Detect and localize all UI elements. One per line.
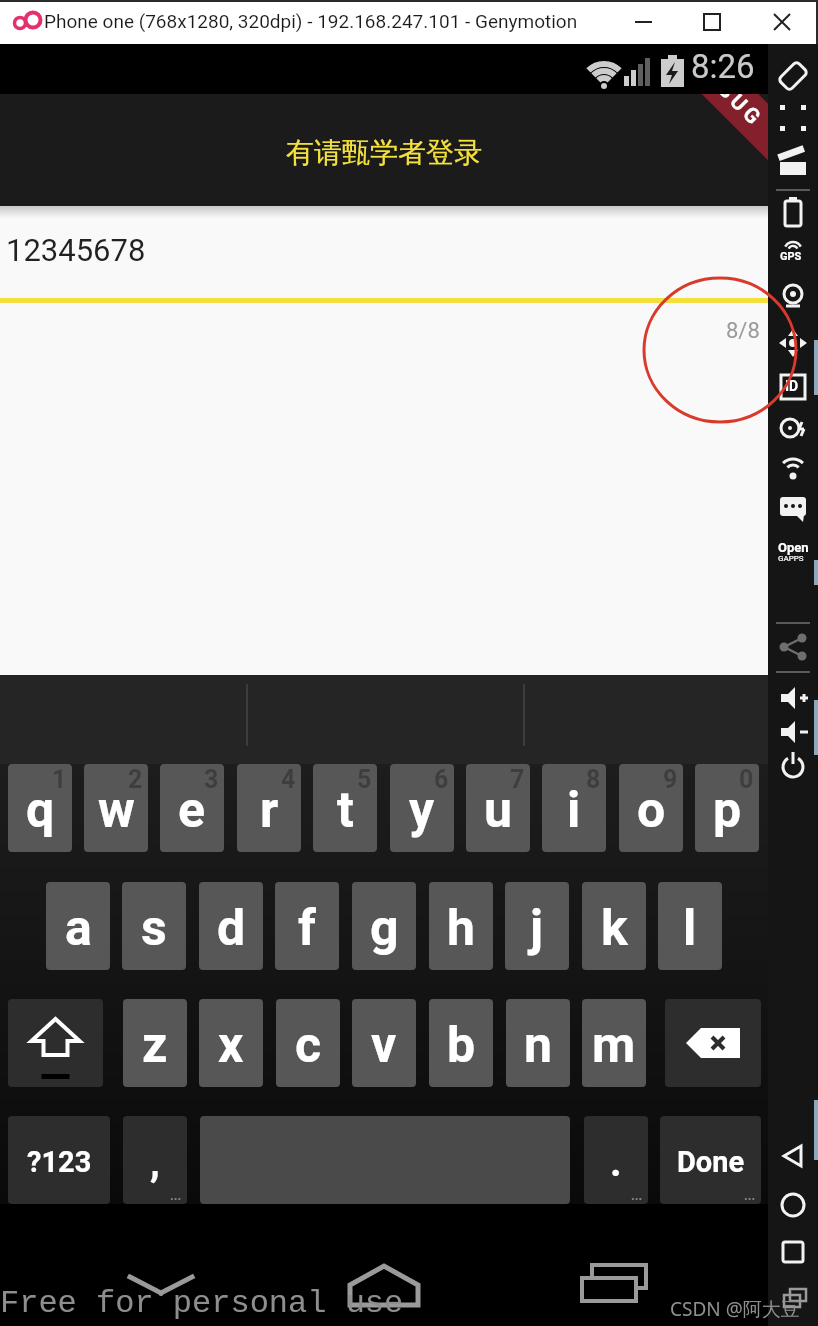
button[interactable]: f <box>275 882 339 970</box>
button[interactable]: y <box>390 764 454 852</box>
staticText: u <box>484 781 513 840</box>
staticText: 有请甄学者登录 <box>286 135 482 170</box>
button[interactable] <box>692 2 734 42</box>
staticText: c <box>295 1016 322 1075</box>
staticText: x <box>218 1016 244 1075</box>
staticText: 4 <box>281 765 296 794</box>
staticText: d <box>217 899 246 958</box>
button[interactable]: l <box>658 882 722 970</box>
staticText: 6 <box>434 765 449 794</box>
button[interactable] <box>556 1250 652 1314</box>
staticText: r <box>260 781 279 840</box>
button[interactable]: k <box>582 882 646 970</box>
button[interactable]: x <box>199 999 263 1087</box>
staticText: 3 <box>204 765 219 794</box>
staticText: Phone one (768x1280, 320dpi) - 192.168.2… <box>44 10 578 32</box>
button[interactable] <box>112 1252 212 1314</box>
button[interactable]: e <box>160 764 224 852</box>
staticText: f <box>298 899 316 958</box>
staticText: Open <box>778 540 809 555</box>
staticText: GPS <box>780 250 802 263</box>
button[interactable]: m <box>582 999 646 1087</box>
button[interactable]: u <box>466 764 530 852</box>
button[interactable]: a <box>46 882 110 970</box>
button[interactable]: q <box>8 764 72 852</box>
staticText: 2 <box>128 765 143 794</box>
button[interactable]: n <box>506 999 570 1087</box>
button[interactable]: p <box>695 764 759 852</box>
staticText: s <box>141 899 167 958</box>
button[interactable]: , <box>123 1116 187 1204</box>
staticText: 8 <box>586 765 601 794</box>
staticText: ID <box>785 378 799 394</box>
staticText: b <box>447 1016 476 1075</box>
button[interactable]: d <box>199 882 263 970</box>
button[interactable]: i <box>542 764 606 852</box>
button[interactable]: Done <box>660 1116 761 1204</box>
button[interactable]: v <box>352 999 416 1087</box>
button[interactable] <box>770 1183 816 1227</box>
button[interactable] <box>665 999 761 1087</box>
staticText: n <box>524 1016 553 1075</box>
staticText: g <box>370 899 399 958</box>
staticText: h <box>447 899 476 958</box>
button[interactable]: g <box>352 882 416 970</box>
staticText: . <box>610 1139 622 1186</box>
staticText: ... <box>744 1188 756 1203</box>
button[interactable]: w <box>84 764 148 852</box>
button[interactable]: b <box>429 999 493 1087</box>
button[interactable]: c <box>276 999 340 1087</box>
button[interactable] <box>770 1230 816 1274</box>
staticText: DEBUG <box>689 94 768 132</box>
staticText: 8/8 <box>726 318 760 344</box>
staticText: CSDN @阿大豆 <box>670 1296 800 1322</box>
button[interactable]: z <box>123 999 187 1087</box>
staticText: k <box>601 899 628 958</box>
staticText: j <box>530 899 544 958</box>
button[interactable]: s <box>122 882 186 970</box>
staticText: 5 <box>357 765 372 794</box>
button[interactable]: ?123 <box>8 1116 110 1204</box>
staticText: a <box>65 899 92 958</box>
button[interactable]: j <box>505 882 569 970</box>
staticText: Free for personal use <box>0 1285 404 1321</box>
staticText: e <box>178 781 206 840</box>
button[interactable]: . <box>584 1116 648 1204</box>
staticText: ... <box>170 1188 182 1203</box>
staticText: y <box>409 781 435 840</box>
button[interactable] <box>622 2 664 42</box>
button[interactable] <box>8 999 103 1087</box>
staticText: ?123 <box>27 1145 92 1179</box>
staticText: 7 <box>510 765 525 794</box>
staticText: t <box>337 781 354 840</box>
button[interactable] <box>770 1134 816 1178</box>
staticText: 8:26 <box>691 47 755 86</box>
staticText: Done <box>677 1145 745 1179</box>
staticText: v <box>371 1016 397 1075</box>
button[interactable]: r <box>237 764 301 852</box>
button[interactable] <box>762 2 804 42</box>
staticText: 0 <box>739 765 754 794</box>
staticText: o <box>637 781 666 840</box>
button[interactable]: t <box>313 764 377 852</box>
button[interactable] <box>336 1250 432 1314</box>
staticText: i <box>567 781 581 840</box>
staticText: 1 <box>52 765 67 794</box>
button[interactable]: h <box>429 882 493 970</box>
staticText: p <box>713 781 742 840</box>
button[interactable]: o <box>619 764 683 852</box>
staticText: m <box>592 1016 636 1075</box>
staticText: w <box>98 781 135 840</box>
staticText: 9 <box>663 765 678 794</box>
staticText: q <box>26 781 55 840</box>
staticText: ... <box>631 1188 643 1203</box>
staticText: z <box>142 1016 168 1075</box>
staticText: l <box>683 899 697 958</box>
button[interactable]: 12345678 <box>6 232 146 268</box>
staticText: GAPPS <box>778 554 804 563</box>
staticText: , <box>150 1139 160 1186</box>
